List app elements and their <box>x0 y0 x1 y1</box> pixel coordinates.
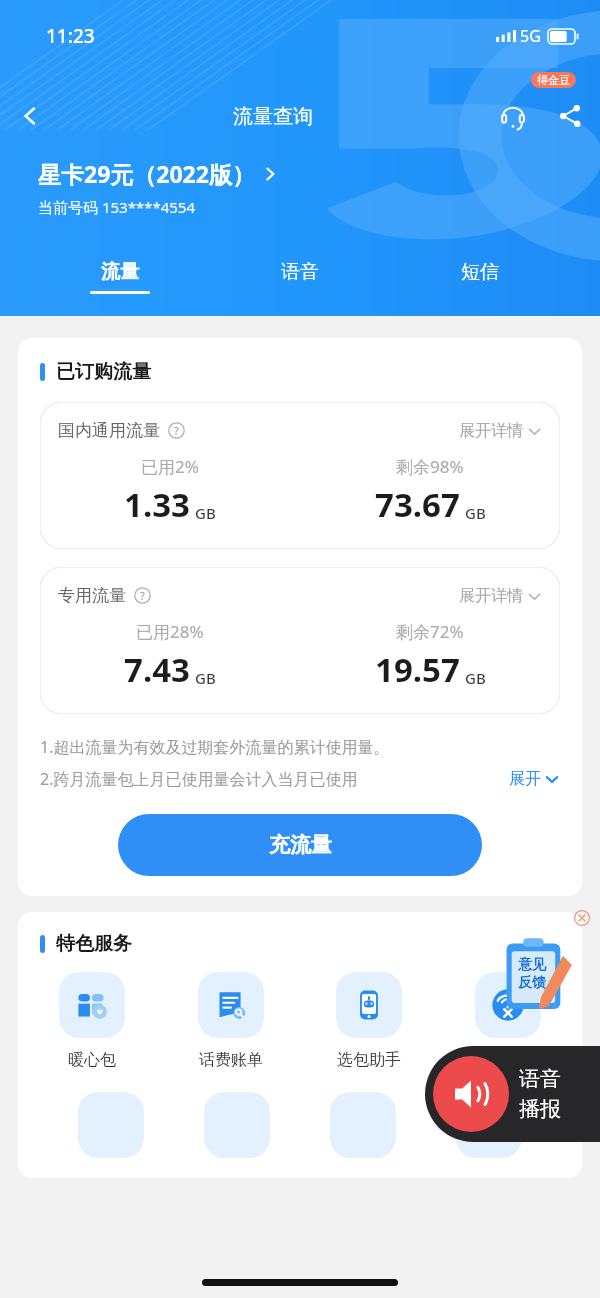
button[interactable]: 流量包退订 <box>443 972 573 1070</box>
staticText: 11:23 <box>46 23 95 49</box>
button[interactable]: 暖心包 <box>27 972 157 1070</box>
button[interactable]: 流量 <box>60 258 180 296</box>
staticText: 已用28% <box>136 620 204 643</box>
button[interactable]: 语音 <box>240 258 360 296</box>
staticText: 展开详情 <box>459 421 523 441</box>
staticText: 展开详情 <box>459 586 523 606</box>
staticText: 国内通用流量 <box>58 420 160 441</box>
button[interactable]: 话费账单 <box>166 972 296 1070</box>
staticText: 已订购流量 <box>56 360 151 384</box>
button[interactable]: 意见 <box>504 936 568 1012</box>
staticText: 已用2% <box>141 455 199 478</box>
staticText: 星卡29元（2022版） <box>38 158 255 189</box>
staticText: 剩余72% <box>396 620 464 643</box>
button[interactable]: Back <box>0 86 60 146</box>
staticText: 1.33 <box>124 482 190 527</box>
staticText: 剩余98% <box>396 455 464 478</box>
staticText: GB <box>465 503 486 523</box>
button[interactable]: Help <box>134 587 151 604</box>
button[interactable]: 星卡29元（2022版） <box>38 158 279 189</box>
button[interactable]: 展开 <box>509 769 560 789</box>
staticText: 得金豆 <box>537 73 570 87</box>
button[interactable]: 展开详情 <box>459 421 542 441</box>
staticText: 7.43 <box>124 647 190 692</box>
button[interactable]: Customer service <box>486 86 540 146</box>
staticText: 话费账单 <box>199 1050 263 1070</box>
staticText: 流量 <box>101 260 139 284</box>
staticText: GB <box>465 668 486 688</box>
button[interactable]: Close <box>572 908 592 928</box>
staticText: 5G <box>520 25 541 47</box>
staticText: GB <box>195 503 216 523</box>
staticText: 当前号码 153****4554 <box>38 197 196 217</box>
staticText: 充流量 <box>269 832 332 858</box>
staticText: 反馈 <box>518 974 546 992</box>
staticText: 选包助手 <box>337 1050 401 1070</box>
staticText: 语音 <box>519 1066 561 1092</box>
staticText: 暖心包 <box>68 1050 116 1070</box>
staticText: 展开 <box>509 769 541 789</box>
staticText: 意见 <box>518 956 546 974</box>
staticText: ? <box>140 588 145 603</box>
staticText: 短信 <box>461 260 499 284</box>
staticText: 1.超出流量为有效及过期套外流量的累计使用量。 <box>40 736 390 758</box>
staticText: 特色服务 <box>56 932 132 956</box>
button[interactable]: 充流量 <box>118 814 482 876</box>
button[interactable]: 语音 <box>425 1046 600 1142</box>
button[interactable]: 短信 <box>420 258 540 296</box>
staticText: 73.67 <box>375 482 460 527</box>
button[interactable]: 选包助手 <box>304 972 434 1070</box>
button[interactable]: 展开详情 <box>459 586 542 606</box>
staticText: GB <box>195 668 216 688</box>
button[interactable]: Help <box>168 422 185 439</box>
staticText: 流量查询 <box>233 104 313 129</box>
staticText: 语音 <box>281 260 319 284</box>
staticText: ? <box>174 423 179 438</box>
button[interactable]: Share <box>540 86 600 146</box>
staticText: 2.跨月流量包上月已使用量会计入当月已使用 <box>40 768 358 790</box>
staticText: 19.57 <box>375 647 460 692</box>
staticText: 流量包退订 <box>468 1050 548 1070</box>
staticText: 专用流量 <box>58 585 126 606</box>
staticText: 播报 <box>519 1096 561 1122</box>
